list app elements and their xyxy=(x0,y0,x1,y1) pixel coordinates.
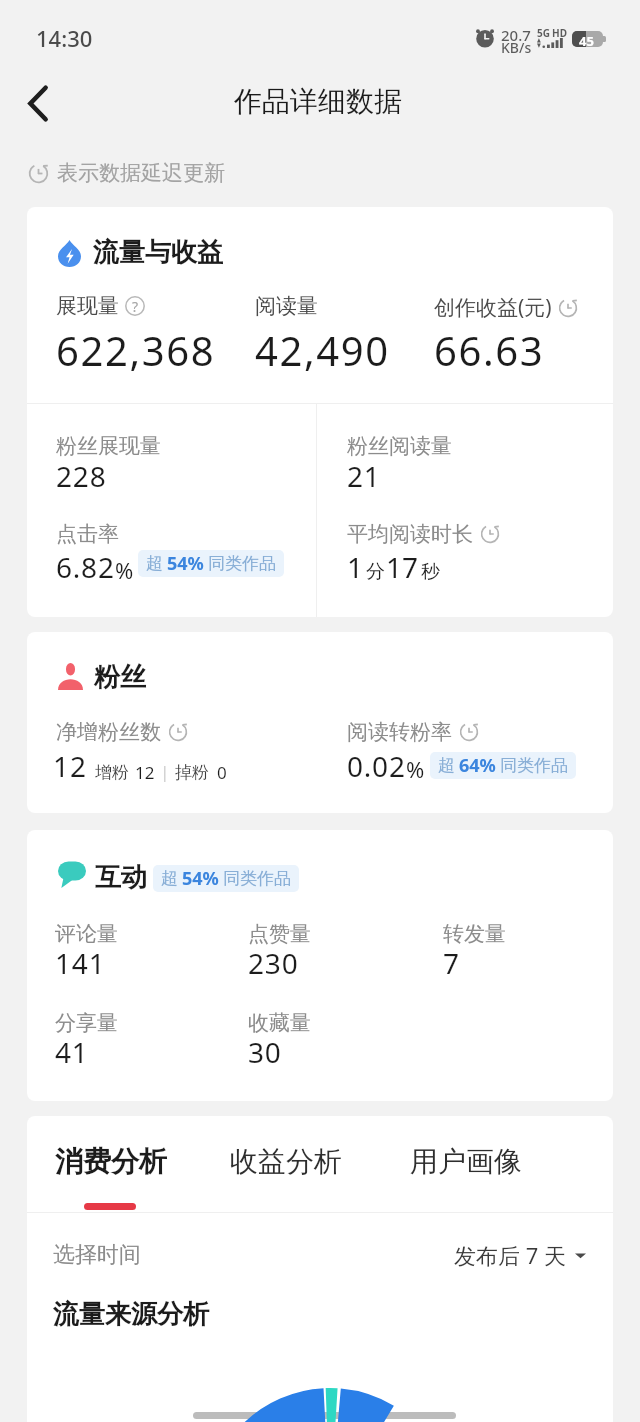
staticText: 5G xyxy=(537,26,550,40)
staticText: 秒 xyxy=(421,560,440,584)
button[interactable]: 消费分析 xyxy=(54,1144,168,1179)
staticText: 0 xyxy=(217,761,227,784)
staticText: % xyxy=(115,555,134,585)
staticText: 超 xyxy=(146,553,163,574)
staticText: 评论量 xyxy=(55,921,118,947)
staticText: 54% xyxy=(167,551,204,576)
staticText: 同类作品 xyxy=(208,553,276,574)
staticText: 粉丝阅读量 xyxy=(347,433,452,459)
staticText: 230 xyxy=(248,944,299,982)
staticText: 66.63 xyxy=(434,323,545,377)
staticText: 41 xyxy=(55,1033,89,1071)
staticText: 0.02 xyxy=(347,747,406,785)
staticText: 粉丝展现量 xyxy=(56,433,161,459)
staticText: 12 xyxy=(135,761,155,784)
staticText: 作品详细数据 xyxy=(234,84,402,119)
staticText: 超 xyxy=(438,755,455,776)
staticText: 同类作品 xyxy=(223,868,291,889)
staticText: KB/s xyxy=(501,38,532,57)
staticText: 1 xyxy=(347,548,364,586)
staticText: 超 xyxy=(161,868,178,889)
staticText: 分享量 xyxy=(55,1010,118,1036)
staticText: 转发量 xyxy=(443,921,506,947)
staticText: 同类作品 xyxy=(500,755,568,776)
button[interactable]: 发布后 7 天 xyxy=(454,1240,586,1270)
staticText: 20.7 xyxy=(501,25,531,45)
staticText: 点赞量 xyxy=(248,921,311,947)
staticText: 17 xyxy=(386,548,419,586)
staticText: 141 xyxy=(55,944,106,982)
staticText: ? xyxy=(132,297,139,316)
button[interactable]: Back xyxy=(10,75,66,131)
button[interactable]: 用户画像 xyxy=(409,1144,523,1179)
staticText: 6.82 xyxy=(56,548,115,586)
staticText: 阅读转粉率 xyxy=(347,719,452,745)
staticText: 21 xyxy=(347,457,381,495)
staticText: 点击率 xyxy=(56,521,119,547)
staticText: 选择时间 xyxy=(53,1241,141,1269)
staticText: 收益分析 xyxy=(230,1144,342,1179)
staticText: % xyxy=(406,754,425,784)
staticText: 粉丝 xyxy=(94,661,146,694)
staticText: 12 xyxy=(53,747,88,785)
staticText: 622,368 xyxy=(56,323,216,377)
staticText: 7 xyxy=(443,944,460,982)
staticText: 228 xyxy=(56,457,107,495)
staticText: 消费分析 xyxy=(55,1144,167,1179)
staticText: 互动 xyxy=(95,861,147,894)
staticText: 收藏量 xyxy=(248,1010,311,1036)
staticText: 表示数据延迟更新 xyxy=(57,160,225,186)
staticText: 平均阅读时长 xyxy=(347,521,473,547)
button[interactable]: 收益分析 xyxy=(229,1144,343,1179)
staticText: 54% xyxy=(182,866,219,891)
staticText: 64% xyxy=(459,753,496,778)
staticText: 阅读量 xyxy=(255,293,318,319)
staticText: HD xyxy=(552,26,567,40)
staticText: 分 xyxy=(366,560,385,584)
staticText: 用户画像 xyxy=(410,1144,522,1179)
staticText: 增粉 xyxy=(95,762,129,783)
staticText: 净增粉丝数 xyxy=(56,719,161,745)
staticText: | xyxy=(160,760,170,783)
staticText: 流量与收益 xyxy=(93,236,223,269)
staticText: 创作收益(元) xyxy=(434,293,552,322)
staticText: 14:30 xyxy=(36,23,93,53)
staticText: 42,490 xyxy=(255,323,390,377)
staticText: 45 xyxy=(579,32,594,50)
staticText: 展现量 xyxy=(56,293,119,319)
staticText: 发布后 7 天 xyxy=(454,1240,567,1270)
staticText: 掉粉 xyxy=(175,762,209,783)
staticText: 30 xyxy=(248,1033,282,1071)
staticText: 流量来源分析 xyxy=(53,1298,209,1331)
